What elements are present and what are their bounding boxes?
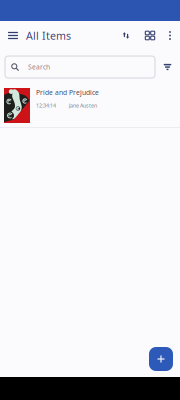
button[interactable]: Menu	[4, 21, 22, 50]
button[interactable]: Filter	[155, 56, 180, 78]
button[interactable]: Pride and Prejudice	[0, 78, 180, 128]
staticText: Jane Austen	[69, 102, 97, 109]
staticText: 12:34:14	[36, 102, 56, 109]
staticText: All Items	[26, 28, 71, 43]
staticText: Pride and Prejudice	[36, 88, 99, 97]
button[interactable]: Add	[149, 347, 173, 371]
staticText: Search	[28, 63, 50, 71]
button[interactable]: Sort	[114, 21, 138, 50]
button[interactable]: More options	[162, 21, 178, 50]
button[interactable]: Grid view	[138, 21, 162, 50]
